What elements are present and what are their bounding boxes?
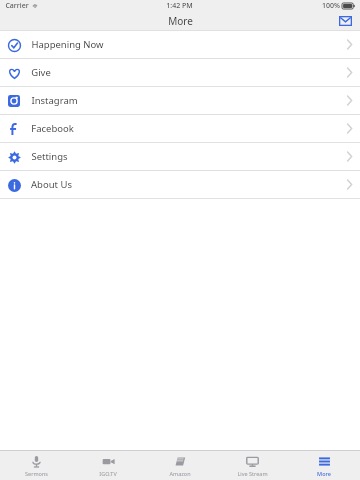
button[interactable]: Settings	[0, 143, 360, 170]
staticText: IGO.TV	[99, 470, 117, 477]
button[interactable]: Live Stream	[216, 451, 288, 480]
staticText: 1:42 PM	[166, 1, 193, 11]
staticText: Happening Now	[31, 38, 104, 51]
button[interactable]: Amazon	[144, 451, 216, 480]
staticText: More	[317, 470, 331, 477]
staticText: Give	[31, 66, 51, 79]
button[interactable]: About Us	[0, 171, 360, 198]
staticText: Carrier	[5, 1, 29, 11]
button[interactable]: More	[288, 451, 360, 480]
button[interactable]: IGO.TV	[72, 451, 144, 480]
staticText: Sermons	[25, 470, 48, 477]
staticText: Live Stream	[237, 470, 268, 477]
staticText: Instagram	[31, 94, 78, 107]
staticText: More	[168, 14, 193, 28]
staticText: About Us	[31, 178, 72, 191]
button[interactable]: Sermons	[0, 451, 72, 480]
button[interactable]: Facebook	[0, 115, 360, 142]
button[interactable]: Instagram	[0, 87, 360, 114]
button[interactable]: Mail	[337, 13, 353, 29]
button[interactable]: Happening Now	[0, 31, 360, 58]
button[interactable]: Give	[0, 59, 360, 86]
staticText: Settings	[31, 150, 68, 163]
staticText: 100%	[322, 1, 340, 11]
staticText: Amazon	[169, 470, 191, 477]
staticText: Facebook	[31, 122, 74, 135]
